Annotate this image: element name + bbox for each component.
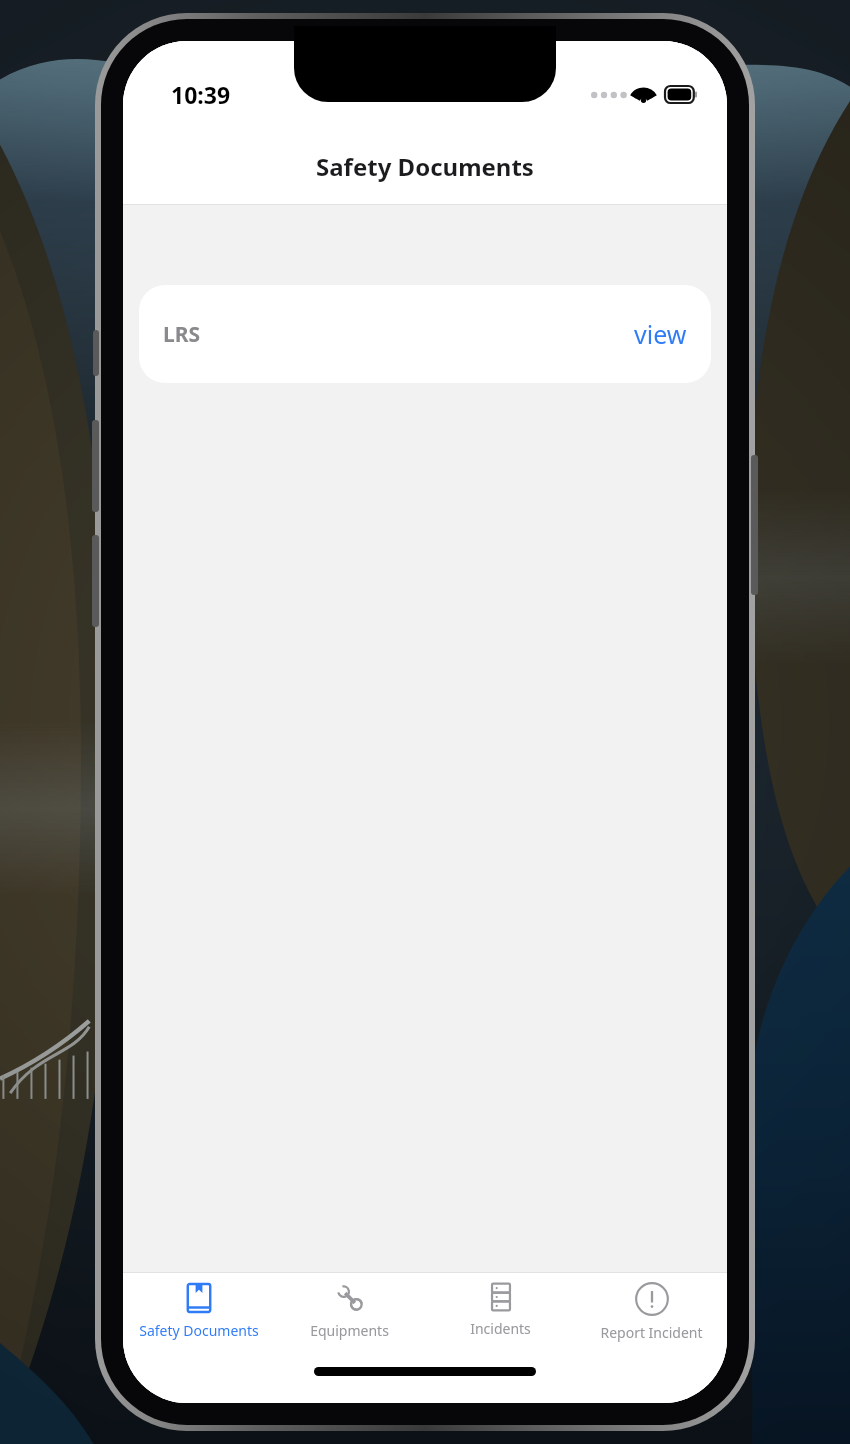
staticText: Safety Documents (139, 1321, 259, 1340)
staticText: Report Incident (600, 1323, 703, 1342)
other: Equipments (333, 1281, 367, 1315)
other: Report Incident (634, 1281, 670, 1317)
other: Safety Documents (182, 1281, 216, 1315)
other: Incidents (485, 1281, 517, 1313)
staticText: LRS (163, 320, 201, 349)
button[interactable]: Incidents (425, 1273, 576, 1357)
staticText: Equipments (310, 1321, 389, 1340)
button[interactable]: Equipments (274, 1273, 425, 1357)
button[interactable]: LRS (139, 285, 711, 383)
staticText: 10:39 (171, 79, 231, 110)
button[interactable]: view (634, 317, 687, 351)
staticText: Incidents (470, 1319, 531, 1338)
button[interactable]: Safety Documents (123, 1273, 274, 1357)
button[interactable]: Report Incident (576, 1273, 727, 1357)
staticText: Safety Documents (316, 150, 534, 183)
